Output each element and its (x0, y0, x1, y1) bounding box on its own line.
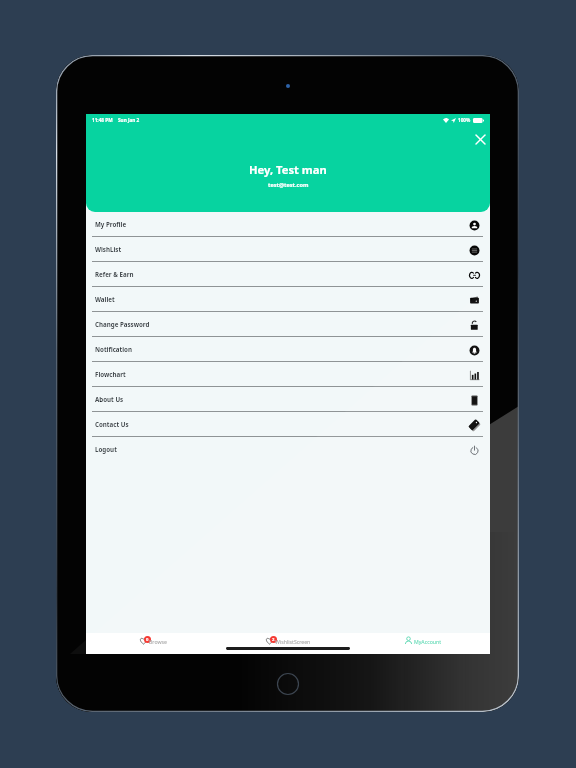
button[interactable]: Close (471, 130, 489, 148)
button[interactable]: Contact Us (86, 412, 490, 437)
button[interactable]: WishList (86, 237, 490, 262)
button[interactable]: 2 (220, 633, 355, 654)
staticText: Logout (95, 445, 117, 453)
staticText: Hey, Test man (249, 162, 327, 177)
staticText: 2 (272, 637, 275, 643)
staticText: Sun Jan 2 (118, 117, 140, 123)
staticText: MyAccount (414, 638, 442, 645)
button[interactable]: 0 (86, 633, 220, 654)
staticText: Notification (95, 345, 132, 353)
staticText: 0 (146, 637, 149, 643)
staticText: Contact Us (95, 420, 129, 428)
staticText: My Profile (95, 220, 127, 228)
staticText: Refer & Earn (95, 270, 134, 278)
button[interactable]: MyAccount (355, 633, 490, 654)
button[interactable]: About Us (86, 387, 490, 412)
button[interactable]: Wallet (86, 287, 490, 312)
staticText: Browse (149, 638, 167, 645)
staticText: Change Password (95, 320, 150, 328)
staticText: 100% (458, 117, 471, 123)
staticText: WishlistScreen (275, 638, 311, 645)
button[interactable]: Notification (86, 337, 490, 362)
button[interactable]: Logout (86, 437, 490, 461)
staticText: test@test.com (268, 181, 309, 189)
staticText: About Us (95, 395, 124, 403)
staticText: Wallet (95, 295, 115, 303)
button[interactable]: Change Password (86, 312, 490, 337)
button[interactable]: Refer & Earn (86, 262, 490, 287)
button[interactable]: My Profile (86, 212, 490, 237)
staticText: 11:48 PM (92, 117, 113, 123)
staticText: WishList (95, 245, 122, 253)
staticText: Flowchart (95, 370, 126, 378)
button[interactable]: Flowchart (86, 362, 490, 387)
